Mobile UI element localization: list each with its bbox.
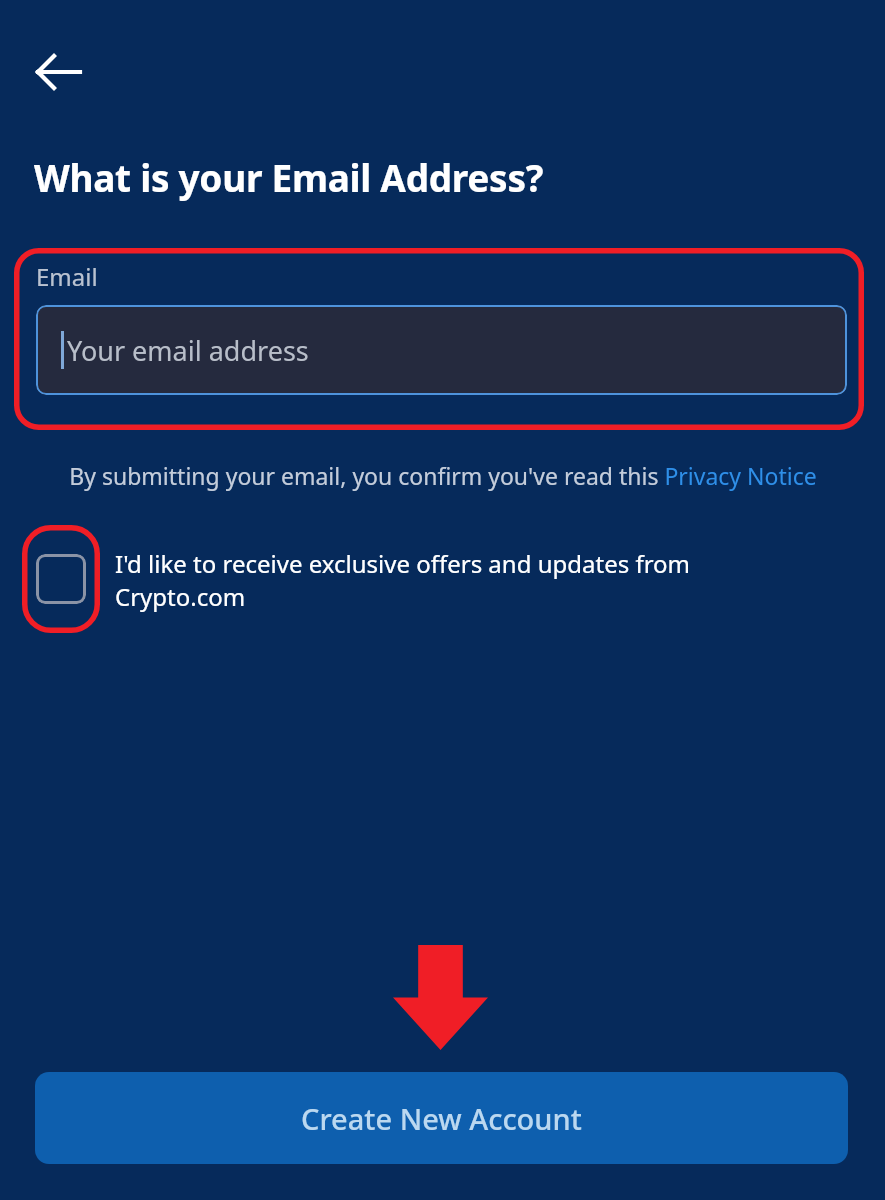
staticText: Email (36, 260, 98, 293)
staticText: I'd like to receive exclusive offers and… (115, 547, 762, 613)
staticText: Your email address (67, 332, 309, 369)
button[interactable]: Back (20, 40, 96, 100)
button[interactable]: I'd like to receive exclusive offers and… (22, 525, 762, 633)
staticText: By submitting your email, you confirm yo… (69, 460, 817, 491)
staticText: What is your Email Address? (34, 152, 544, 202)
button[interactable]: Create New Account (35, 1072, 848, 1164)
button[interactable]: Your email address (36, 305, 847, 395)
staticText: Create New Account (301, 1099, 582, 1138)
